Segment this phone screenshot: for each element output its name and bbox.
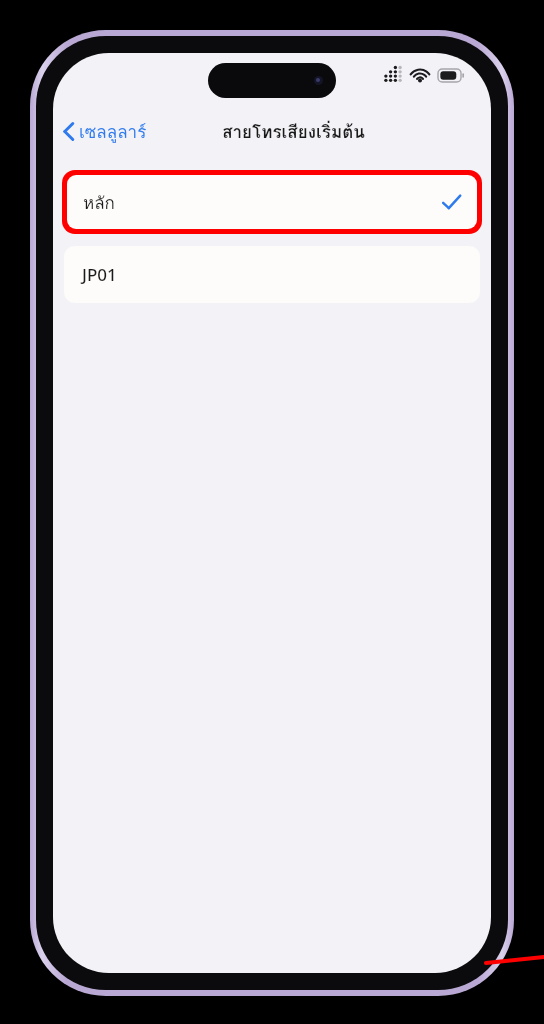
staticText: เซลลูลาร์ [79, 118, 147, 145]
button[interactable]: หลัก [67, 175, 477, 229]
staticText: JP01 [82, 263, 117, 286]
staticText: หลัก [83, 189, 115, 216]
staticText: สายโทรเสียงเริ่มต้น [222, 118, 365, 145]
other: Selected [442, 194, 461, 210]
button[interactable]: JP01 [64, 246, 480, 303]
button[interactable]: เซลลูลาร์ [59, 114, 151, 149]
